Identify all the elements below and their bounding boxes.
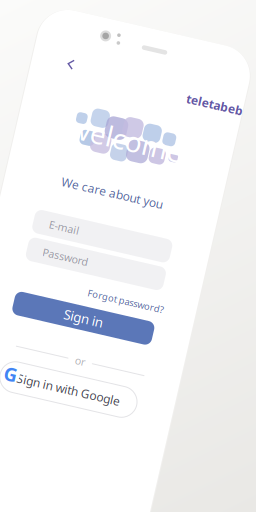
button[interactable]: Back [18,71,40,93]
staticText: Password [44,264,91,278]
button[interactable]: Sign in with Google [30,384,170,415]
staticText: Sign in with Google [47,391,153,407]
staticText: Sign in [78,318,118,335]
staticText: Forgot password? [97,294,175,307]
staticText: teletabeb [149,81,207,97]
staticText: welcome [41,124,158,162]
staticText: G [33,385,47,410]
button[interactable]: Sign in [27,315,170,339]
button[interactable]: Forgot password? [85,294,175,307]
staticText: E-mail [44,235,75,250]
staticText: or [100,362,110,376]
staticText: We care about you [46,190,150,206]
